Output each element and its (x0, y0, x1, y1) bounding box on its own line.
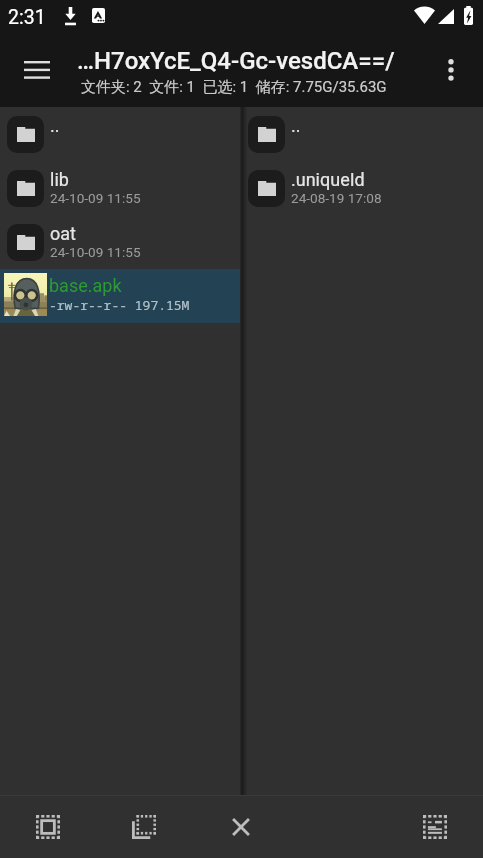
staticText: 2:31 (8, 6, 46, 29)
staticText: .. (50, 115, 60, 136)
staticText: 24-08-19 17:08 (291, 190, 382, 206)
button[interactable]: Invert selection (96, 796, 192, 858)
staticText: oat (50, 223, 76, 244)
staticText: base.apk (49, 275, 122, 296)
staticText: 文件夹: 2 文件: 1 已选: 1 储存: 7.75G/35.63G (81, 78, 387, 97)
button[interactable]: oat (0, 215, 241, 269)
button[interactable]: base.apk (0, 269, 241, 323)
staticText: lib (50, 169, 69, 190)
button[interactable]: .. (0, 107, 241, 161)
button[interactable]: Close (192, 796, 289, 858)
button[interactable]: More options (429, 48, 473, 92)
staticText: -rw-r--r-- 197.15M (49, 296, 190, 314)
button[interactable]: Selection list (386, 796, 483, 858)
button[interactable]: lib (0, 161, 241, 215)
staticText: .. (291, 115, 301, 136)
staticText: …H7oxYcE_Q4-Gc-vesdCA==/ (77, 47, 395, 75)
button[interactable]: Navigation menu (13, 46, 61, 94)
staticText: 24-10-09 11:55 (50, 190, 141, 206)
button[interactable]: .uniqueId (241, 161, 483, 215)
button[interactable]: Select all (0, 796, 96, 858)
button[interactable]: .. (241, 107, 483, 161)
staticText: 24-10-09 11:55 (50, 244, 141, 260)
staticText: .uniqueId (291, 169, 365, 190)
